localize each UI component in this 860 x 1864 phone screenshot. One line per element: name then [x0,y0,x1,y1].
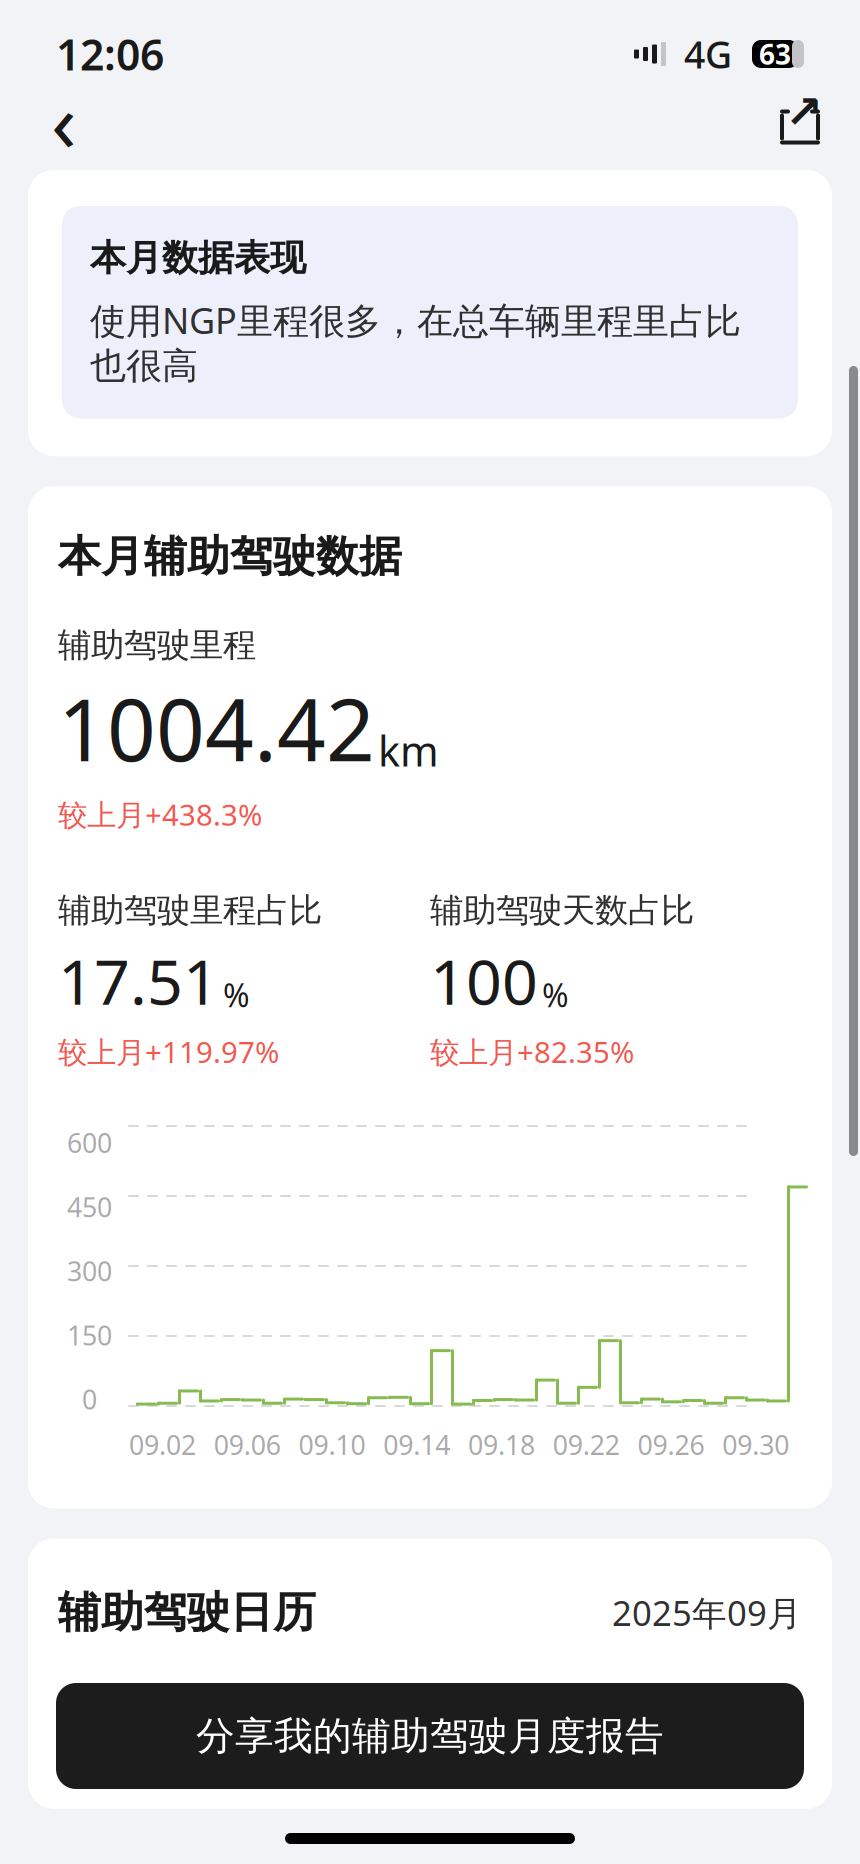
staticText: 09.30 [722,1427,789,1462]
staticText: % [223,973,250,1016]
staticText: 使用NGP里程很多，在总车辆里程里占比也很高 [90,296,741,388]
staticText: % [542,973,569,1016]
staticText: 较上月+82.35% [430,1032,634,1071]
staticText: 09.10 [298,1427,365,1462]
staticText: 09.22 [553,1427,620,1462]
staticText: 600 [67,1125,112,1160]
staticText: ↗ [785,86,823,138]
staticText: 100 [430,939,538,1022]
staticText: 63 [759,35,791,73]
staticText: 较上月+119.97% [58,1032,279,1071]
staticText: 辅助驾驶里程占比 [58,890,322,931]
staticText: 1004.42 [58,672,375,785]
button[interactable]: 分享我的辅助驾驶月度报告 [56,1683,804,1789]
staticText: 12:06 [56,26,164,82]
staticText: 较上月+438.3% [58,795,262,834]
staticText: 09.18 [468,1427,535,1462]
staticText: 17.51 [58,939,219,1022]
staticText: 450 [67,1189,112,1224]
staticText: 4G [684,29,732,79]
staticText: 150 [67,1317,112,1353]
staticText: km [378,723,439,778]
staticText: ‹ [51,65,77,175]
staticText: 分享我的辅助驾驶月度报告 [196,1712,664,1760]
staticText: 09.14 [383,1427,450,1462]
staticText: 2025年09月 [612,1590,802,1636]
staticText: 辅助驾驶里程 [58,625,256,665]
button[interactable]: 返回 [34,90,94,150]
staticText: 0 [82,1382,97,1417]
staticText: 本月数据表现 [90,236,306,280]
staticText: 09.06 [214,1427,281,1462]
staticText: 09.26 [637,1427,704,1462]
staticText: 300 [67,1253,112,1289]
staticText: 09.02 [129,1427,196,1462]
staticText: 辅助驾驶天数占比 [430,890,694,931]
staticText: 辅助驾驶日历 [58,1586,316,1639]
staticText: 本月辅助驾驶数据 [58,530,402,583]
button[interactable]: 分享 [774,93,826,147]
